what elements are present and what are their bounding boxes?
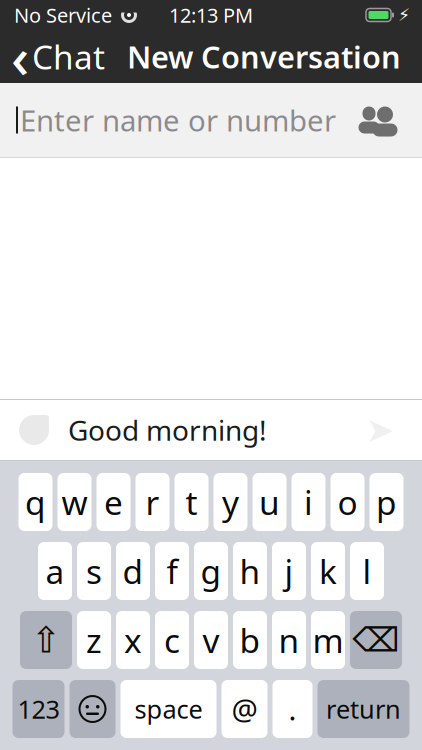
staticText: l: [362, 549, 371, 593]
button[interactable]: h: [233, 542, 267, 600]
button[interactable]: m: [311, 611, 345, 669]
button[interactable]: a: [38, 542, 72, 600]
staticText: d: [122, 549, 143, 593]
button[interactable]: z: [77, 611, 111, 669]
staticText: g: [200, 549, 221, 593]
staticText: p: [376, 480, 397, 524]
staticText: h: [239, 549, 260, 593]
button[interactable]: k: [311, 542, 345, 600]
button[interactable]: q: [18, 473, 52, 531]
staticText: o: [337, 480, 357, 524]
button[interactable]: r: [135, 473, 169, 531]
button[interactable]: c: [155, 611, 189, 669]
staticText: ‹: [11, 19, 29, 94]
button[interactable]: ‹: [0, 26, 111, 87]
button[interactable]: space: [120, 680, 216, 738]
staticText: i: [304, 480, 313, 524]
button[interactable]: Send: [356, 408, 404, 452]
staticText: t: [185, 480, 197, 524]
button[interactable]: d: [116, 542, 150, 600]
staticText: ⇧: [31, 620, 61, 660]
staticText: b: [239, 618, 260, 662]
button[interactable]: i: [291, 473, 325, 531]
button[interactable]: o: [330, 473, 364, 531]
button[interactable]: v: [194, 611, 228, 669]
button[interactable]: s: [77, 542, 111, 600]
staticText: s: [86, 549, 102, 593]
staticText: 12:13 PM: [169, 2, 253, 28]
staticText: j: [284, 549, 293, 593]
staticText: n: [278, 618, 299, 662]
staticText: Enter name or number: [20, 100, 336, 139]
button[interactable]: g: [194, 542, 228, 600]
staticText: @: [231, 689, 257, 728]
button[interactable]: return: [317, 680, 409, 738]
staticText: q: [25, 480, 46, 524]
button[interactable]: 123: [12, 680, 64, 738]
staticText: y: [222, 480, 239, 524]
staticText: m: [312, 618, 343, 662]
button[interactable]: e: [96, 473, 130, 531]
staticText: v: [202, 618, 219, 662]
staticText: w: [61, 480, 87, 524]
button[interactable]: n: [272, 611, 306, 669]
button[interactable]: x: [116, 611, 150, 669]
button[interactable]: f: [155, 542, 189, 600]
staticText: space: [134, 692, 202, 726]
button[interactable]: j: [272, 542, 306, 600]
staticText: u: [259, 480, 280, 524]
button[interactable]: l: [350, 542, 384, 600]
button[interactable]: b: [233, 611, 267, 669]
staticText: x: [124, 618, 142, 662]
button[interactable]: .: [272, 680, 312, 738]
staticText: 123: [17, 692, 59, 726]
staticText: c: [164, 618, 180, 662]
button[interactable]: u: [252, 473, 286, 531]
staticText: f: [166, 549, 177, 593]
button[interactable]: y: [213, 473, 247, 531]
staticText: z: [86, 618, 102, 662]
staticText: return: [326, 692, 401, 726]
staticText: a: [45, 549, 64, 593]
button[interactable]: Emoji: [69, 680, 115, 738]
staticText: e: [104, 480, 123, 524]
staticText: k: [319, 549, 337, 593]
button[interactable]: @: [221, 680, 267, 738]
button[interactable]: Delete: [350, 611, 402, 669]
staticText: ➤: [365, 410, 394, 450]
button[interactable]: w: [57, 473, 91, 531]
button[interactable]: Enter name or number: [0, 83, 422, 157]
staticText: ⌫: [352, 621, 399, 659]
staticText: Good morning!: [68, 411, 267, 449]
button[interactable]: p: [369, 473, 403, 531]
button[interactable]: t: [174, 473, 208, 531]
staticText: r: [145, 480, 159, 524]
staticText: ⚡︎: [398, 5, 410, 25]
staticText: New Conversation: [127, 36, 401, 77]
staticText: .: [288, 689, 296, 728]
staticText: Chat: [32, 34, 105, 79]
staticText: No Service: [14, 2, 112, 28]
button[interactable]: Shift: [20, 611, 72, 669]
